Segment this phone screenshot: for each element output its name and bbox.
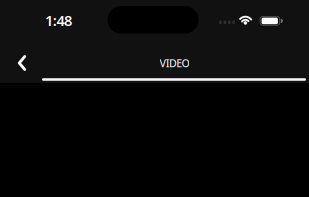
- button[interactable]: Back: [0, 48, 44, 78]
- button[interactable]: Playback progress: [42, 78, 306, 81]
- staticText: 1:48: [45, 11, 72, 30]
- staticText: VIDEO: [160, 56, 189, 70]
